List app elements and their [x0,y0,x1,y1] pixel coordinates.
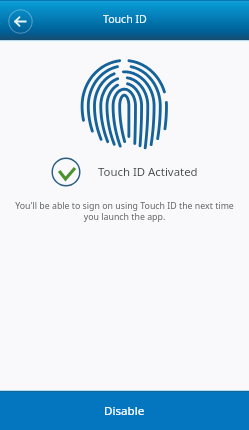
staticText: Touch ID Activated [98,164,198,180]
button[interactable]: Disable [0,392,249,430]
staticText: Touch ID [103,12,147,26]
staticText: Disable [104,403,145,419]
button[interactable]: Back [8,9,33,34]
staticText: You'll be able to sign on using Touch ID… [0,200,249,222]
